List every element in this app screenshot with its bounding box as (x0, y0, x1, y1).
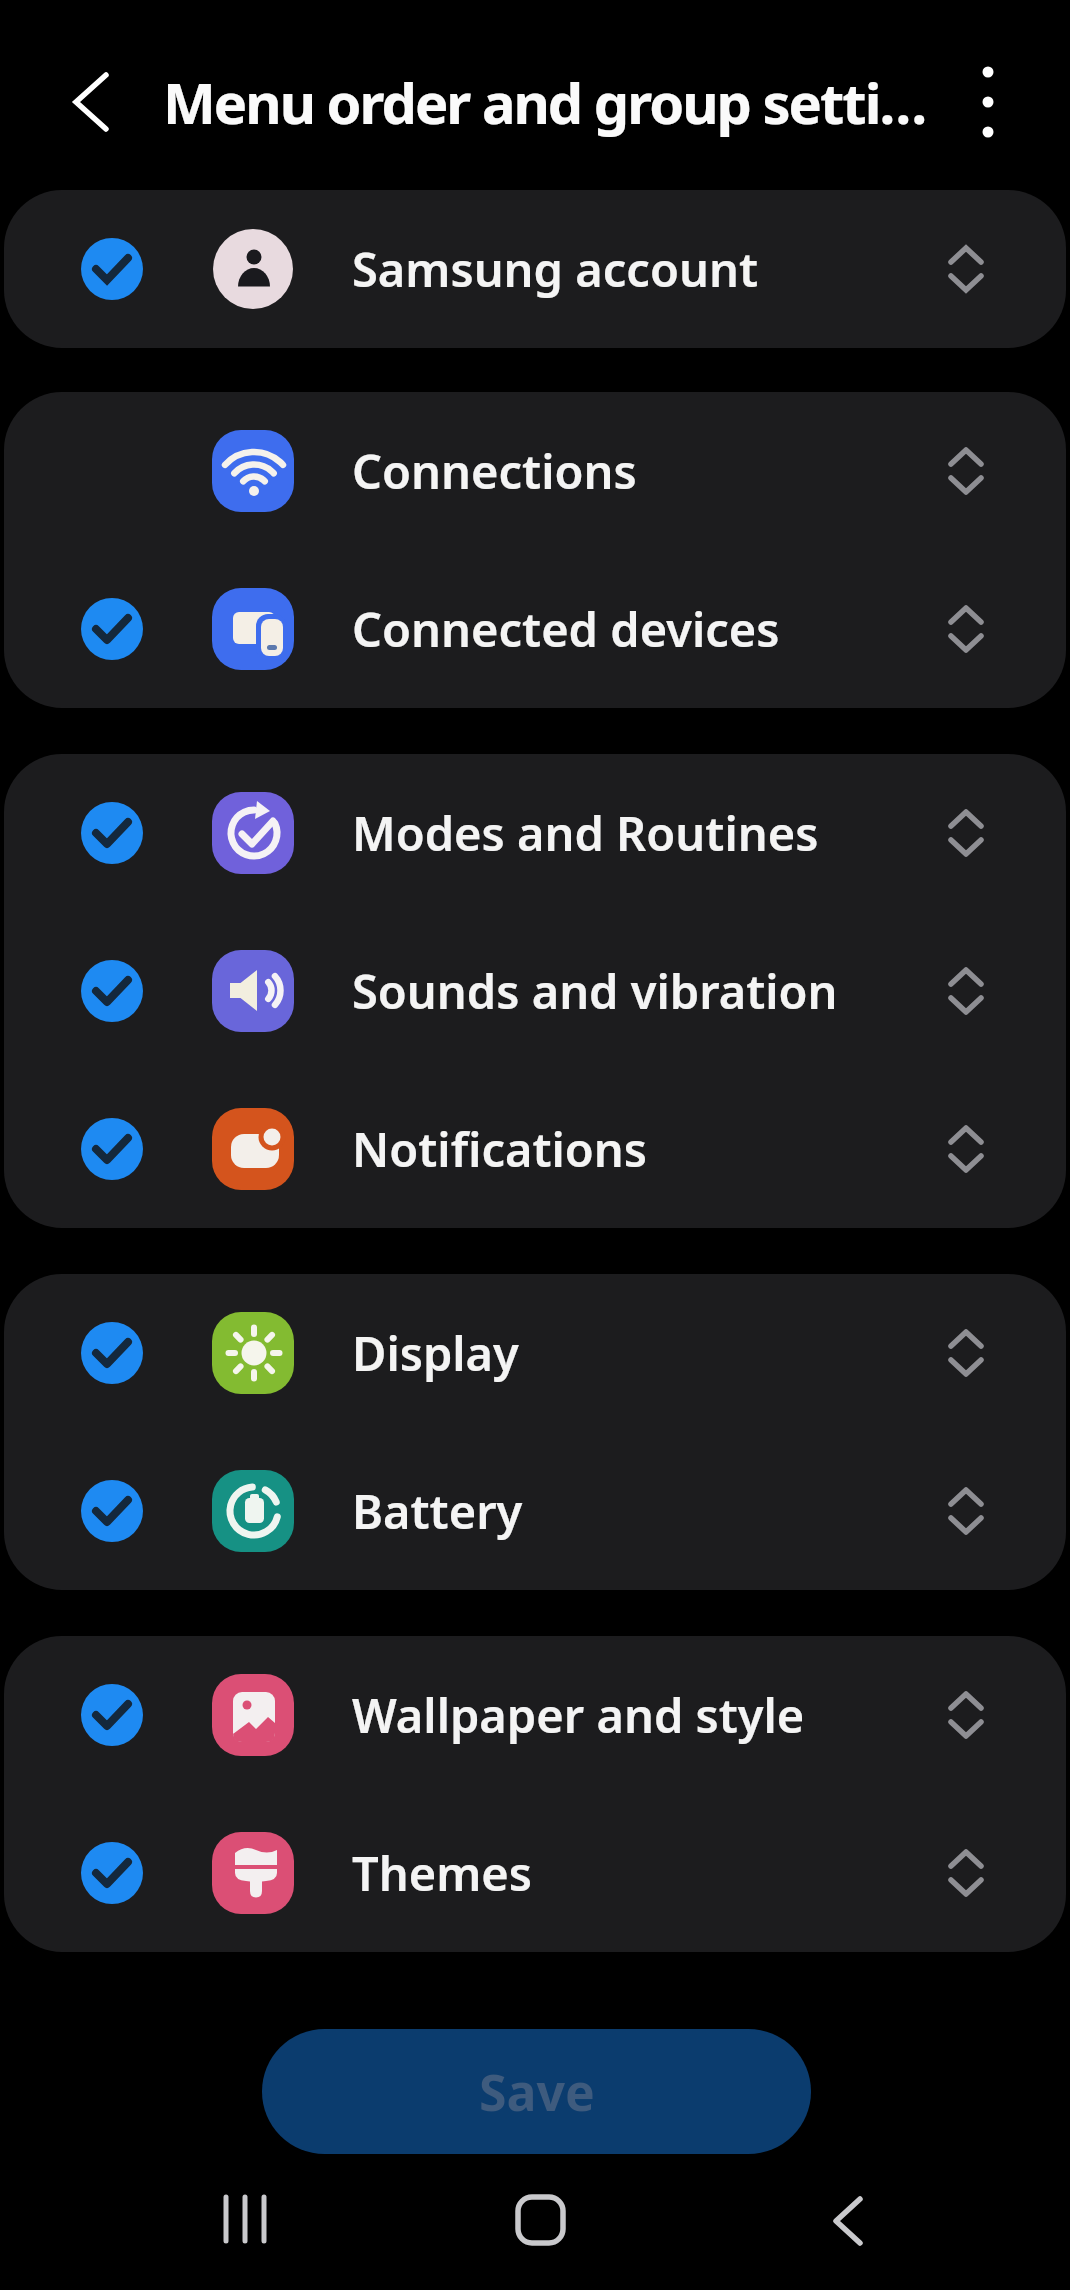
button[interactable] (932, 957, 1000, 1025)
button[interactable] (932, 1477, 1000, 1545)
staticText: Themes (352, 1841, 533, 1905)
button[interactable] (50, 59, 136, 145)
button[interactable] (932, 595, 1000, 663)
button[interactable] (932, 1319, 1000, 1387)
button[interactable]: Themes (4, 1794, 1066, 1952)
button[interactable] (495, 2173, 585, 2263)
button[interactable]: Samsung account (4, 190, 1066, 348)
button[interactable]: Connections (4, 392, 1066, 550)
button[interactable] (948, 62, 1028, 142)
button[interactable]: Connected devices (4, 550, 1066, 708)
staticText: Save (479, 2058, 595, 2126)
button[interactable] (932, 437, 1000, 505)
staticText: Connected devices (352, 597, 780, 661)
staticText: Wallpaper and style (352, 1683, 805, 1747)
button[interactable] (932, 1839, 1000, 1907)
button[interactable]: Sounds and vibration (4, 912, 1066, 1070)
button[interactable]: Notifications (4, 1070, 1066, 1228)
button[interactable]: Battery (4, 1432, 1066, 1590)
button[interactable] (932, 235, 1000, 303)
button[interactable]: Save (262, 2029, 811, 2154)
button[interactable] (800, 2173, 890, 2263)
button[interactable] (932, 1681, 1000, 1749)
staticText: Display (352, 1321, 519, 1385)
staticText: Menu order and group setti… (163, 64, 926, 140)
button[interactable]: Wallpaper and style (4, 1636, 1066, 1794)
button[interactable] (932, 1115, 1000, 1183)
staticText: Connections (352, 439, 637, 503)
staticText: Modes and Routines (352, 801, 819, 865)
staticText: Notifications (352, 1117, 648, 1181)
button[interactable] (932, 799, 1000, 867)
button[interactable]: Display (4, 1274, 1066, 1432)
staticText: Battery (352, 1479, 523, 1543)
staticText: Sounds and vibration (352, 959, 838, 1023)
button[interactable] (200, 2173, 290, 2263)
staticText: Samsung account (352, 237, 758, 301)
button[interactable]: Modes and Routines (4, 754, 1066, 912)
